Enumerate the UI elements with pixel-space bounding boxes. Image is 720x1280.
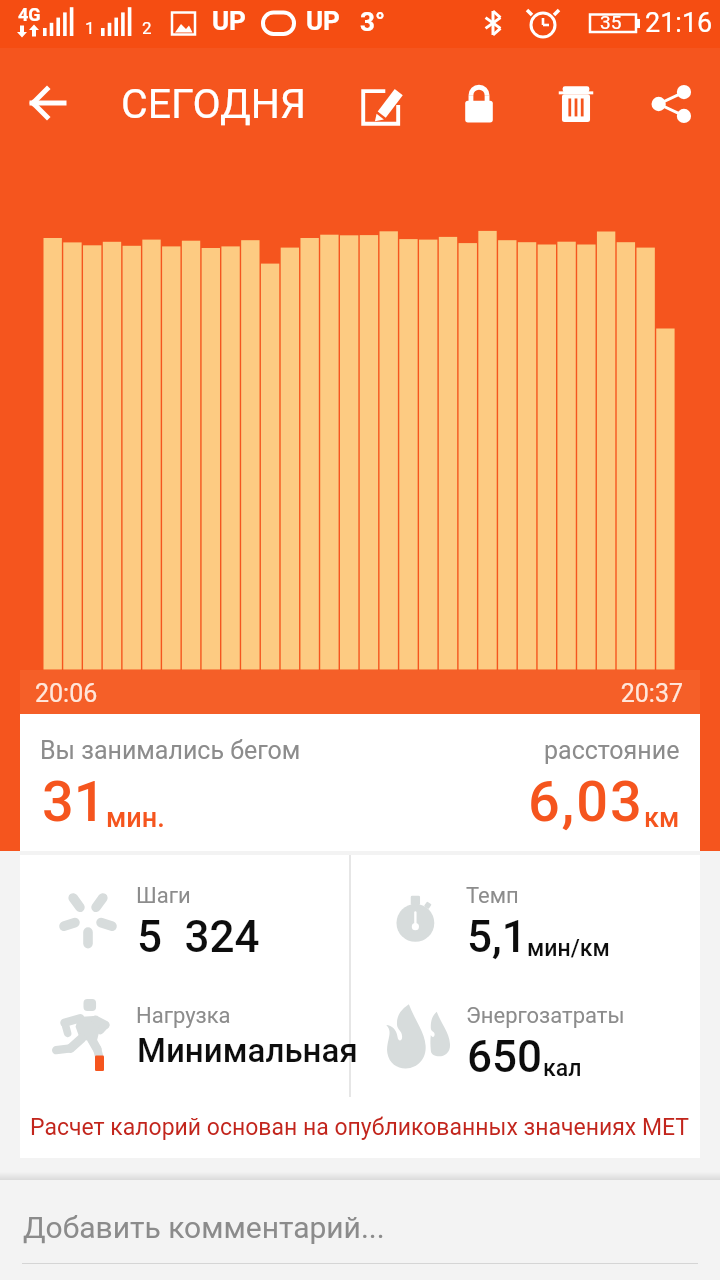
button[interactable]: Back xyxy=(18,73,78,133)
staticText: 21:16 xyxy=(645,7,713,39)
staticText: 6,03 xyxy=(528,769,644,835)
button[interactable]: Lock xyxy=(450,48,508,160)
staticText: Вы занимались бегом xyxy=(40,736,301,765)
staticText: 31 xyxy=(42,769,106,835)
staticText: 5,1 xyxy=(467,911,527,963)
staticText: Шаги xyxy=(136,883,191,909)
button[interactable]: Share xyxy=(643,48,701,160)
button[interactable]: Шаги xyxy=(20,855,350,975)
staticText: кал xyxy=(543,1055,582,1082)
staticText: 1 xyxy=(85,18,95,38)
staticText: 35 xyxy=(600,11,622,33)
staticText: мин/км xyxy=(527,935,610,962)
staticText: UP xyxy=(212,6,246,36)
staticText: 4G xyxy=(18,4,41,25)
button[interactable]: Темп xyxy=(350,855,680,975)
button[interactable]: Edit xyxy=(354,48,412,160)
staticText: 5 324 xyxy=(137,911,260,963)
button[interactable]: Добавить комментарий... xyxy=(0,1180,720,1280)
staticText: 20:06 xyxy=(35,679,98,708)
button[interactable]: Delete xyxy=(547,48,605,160)
staticText: 20:37 xyxy=(570,679,683,708)
staticText: Добавить комментарий... xyxy=(23,1210,385,1245)
staticText: СЕГОДНЯ xyxy=(121,80,307,128)
staticText: 3° xyxy=(360,7,386,37)
staticText: Минимальная xyxy=(137,1031,358,1070)
staticText: 2 xyxy=(142,18,152,38)
staticText: расстояние xyxy=(544,736,680,765)
button[interactable]: Энергозатраты xyxy=(350,975,680,1095)
staticText: UP xyxy=(306,6,340,36)
staticText: км xyxy=(644,802,680,834)
staticText: Энергозатраты xyxy=(466,1003,625,1029)
staticText: Расчет калорий основан на опубликованных… xyxy=(30,1114,690,1141)
staticText: Нагрузка xyxy=(136,1003,231,1029)
staticText: 650 xyxy=(467,1031,543,1083)
button[interactable]: Нагрузка xyxy=(20,975,350,1095)
staticText: Темп xyxy=(466,883,519,909)
staticText: мин. xyxy=(106,802,165,834)
